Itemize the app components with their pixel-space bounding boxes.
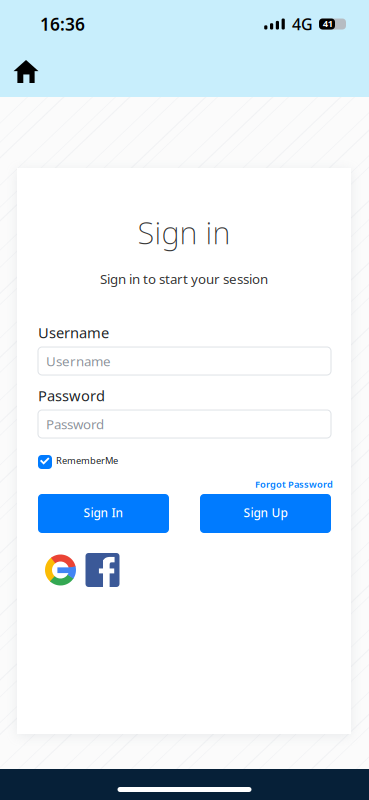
staticText: Password bbox=[38, 386, 105, 405]
staticText: 16:36 bbox=[40, 12, 85, 35]
button[interactable]: Home bbox=[0, 0, 52, 97]
button[interactable]: Sign Up bbox=[200, 494, 331, 533]
staticText: Forgot Password bbox=[255, 478, 333, 490]
staticText: RememberMe bbox=[56, 454, 118, 467]
staticText: Sign in to start your session bbox=[100, 270, 268, 288]
button[interactable]: Sign in with Google bbox=[45, 554, 76, 585]
staticText: Sign in bbox=[137, 212, 230, 253]
staticText: Username bbox=[46, 352, 111, 370]
staticText: 4G bbox=[292, 13, 313, 35]
staticText: Password bbox=[46, 415, 104, 433]
button[interactable]: RememberMe bbox=[38, 455, 118, 469]
staticText: Sign In bbox=[83, 504, 123, 520]
button[interactable]: Forgot Password bbox=[255, 478, 333, 490]
button[interactable]: Sign In bbox=[38, 494, 169, 533]
staticText: Sign Up bbox=[243, 504, 287, 520]
staticText: Username bbox=[38, 323, 109, 342]
staticText: 41 bbox=[323, 17, 333, 30]
button[interactable]: Sign in with Facebook bbox=[85, 553, 119, 587]
